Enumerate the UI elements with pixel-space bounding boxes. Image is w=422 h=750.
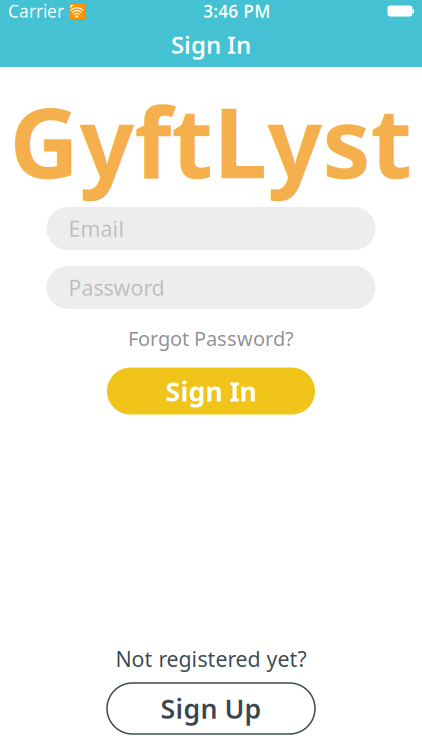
staticText: Email bbox=[68, 214, 124, 243]
staticText: Sign In bbox=[165, 373, 256, 409]
staticText: Not registered yet? bbox=[115, 645, 306, 673]
button[interactable]: Forgot Password? bbox=[118, 319, 304, 358]
staticText: Carrier bbox=[8, 0, 64, 22]
staticText: Forgot Password? bbox=[128, 325, 294, 352]
staticText: 🛜 bbox=[64, 1, 86, 21]
staticText: GyftLyst bbox=[9, 77, 412, 205]
staticText: 3:46 PM bbox=[203, 0, 270, 22]
staticText: Password bbox=[68, 273, 164, 302]
staticText: Sign Up bbox=[160, 691, 261, 726]
button[interactable]: Sign Up bbox=[107, 683, 315, 734]
button[interactable]: Sign In bbox=[107, 368, 315, 415]
staticText: Sign In bbox=[171, 29, 251, 60]
